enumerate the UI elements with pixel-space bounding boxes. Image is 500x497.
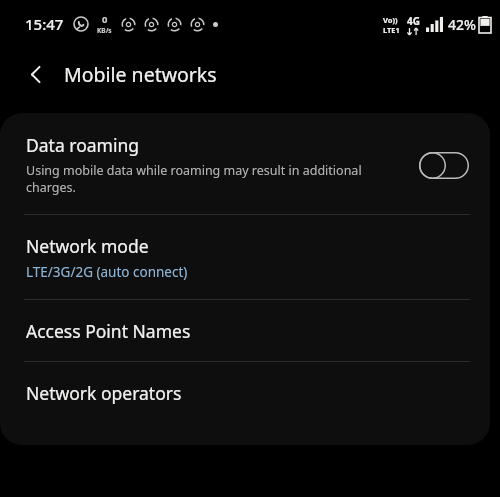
staticText: 4G (407, 14, 420, 28)
button[interactable]: Data roaming toggle (416, 148, 472, 182)
button[interactable]: Network operators (0, 362, 490, 423)
button[interactable]: Back (14, 52, 58, 96)
staticText: Data roaming (26, 133, 140, 157)
staticText: LTE1 (383, 25, 400, 35)
staticText: 42% (448, 15, 476, 34)
staticText: Network mode (26, 234, 149, 258)
staticText: KB/s (97, 26, 112, 35)
button[interactable]: Access Point Names (0, 300, 490, 361)
staticText: LTE/3G/2G (auto connect) (26, 263, 188, 281)
button[interactable]: Network mode (0, 215, 490, 299)
staticText: 15:47 (25, 14, 64, 34)
button[interactable]: Data roaming (0, 113, 490, 214)
staticText: 0 (102, 13, 108, 26)
staticText: Network operators (26, 381, 182, 405)
staticText: Mobile networks (64, 61, 217, 88)
staticText: Vo)) (383, 15, 398, 25)
staticText: Access Point Names (26, 319, 191, 343)
staticText: Using mobile data while roaming may resu… (26, 162, 406, 196)
